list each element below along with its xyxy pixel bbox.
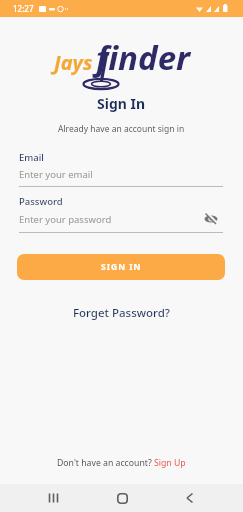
- button[interactable]: Sign Up: [154, 457, 186, 469]
- button[interactable]: SIGN IN: [17, 254, 225, 280]
- button[interactable]: [108, 484, 136, 512]
- staticText: Jays: [54, 49, 93, 76]
- staticText: Password: [19, 195, 63, 208]
- staticText: 12:27: [13, 3, 34, 14]
- staticText: Don't have an account?: [57, 457, 154, 469]
- button[interactable]: Forget Password?: [73, 305, 170, 321]
- staticText: Enter your email: [19, 168, 93, 181]
- staticText: finder: [96, 35, 190, 80]
- staticText: Enter your password: [19, 213, 204, 226]
- staticText: SIGN IN: [101, 261, 142, 273]
- staticText: Already have an account sign in: [58, 123, 185, 135]
- button[interactable]: [204, 212, 218, 226]
- staticText: Sign In: [97, 94, 146, 113]
- button[interactable]: [40, 484, 68, 512]
- staticText: Email: [19, 151, 44, 164]
- button[interactable]: [176, 484, 204, 512]
